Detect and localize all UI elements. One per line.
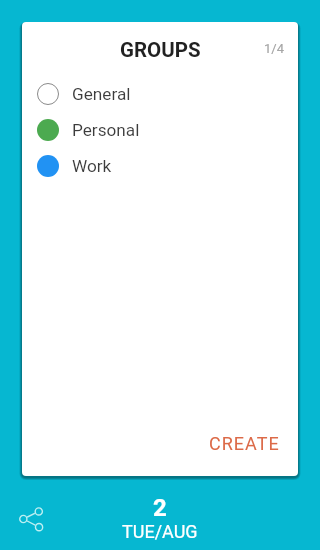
button[interactable]: 2 bbox=[122, 494, 198, 543]
staticText: GROUPS bbox=[120, 38, 201, 62]
button[interactable]: Work bbox=[22, 148, 298, 184]
button[interactable]: Share bbox=[12, 500, 50, 538]
button[interactable]: General bbox=[22, 76, 298, 112]
staticText: General bbox=[72, 84, 131, 104]
button[interactable]: Personal bbox=[22, 112, 298, 148]
button[interactable]: CREATE bbox=[199, 425, 290, 462]
staticText: Work bbox=[72, 156, 112, 176]
staticText: CREATE bbox=[209, 433, 280, 454]
staticText: TUE/AUG bbox=[122, 521, 198, 542]
staticText: 2 bbox=[153, 494, 167, 522]
staticText: Personal bbox=[72, 120, 140, 140]
staticText: 1/4 bbox=[264, 41, 284, 56]
